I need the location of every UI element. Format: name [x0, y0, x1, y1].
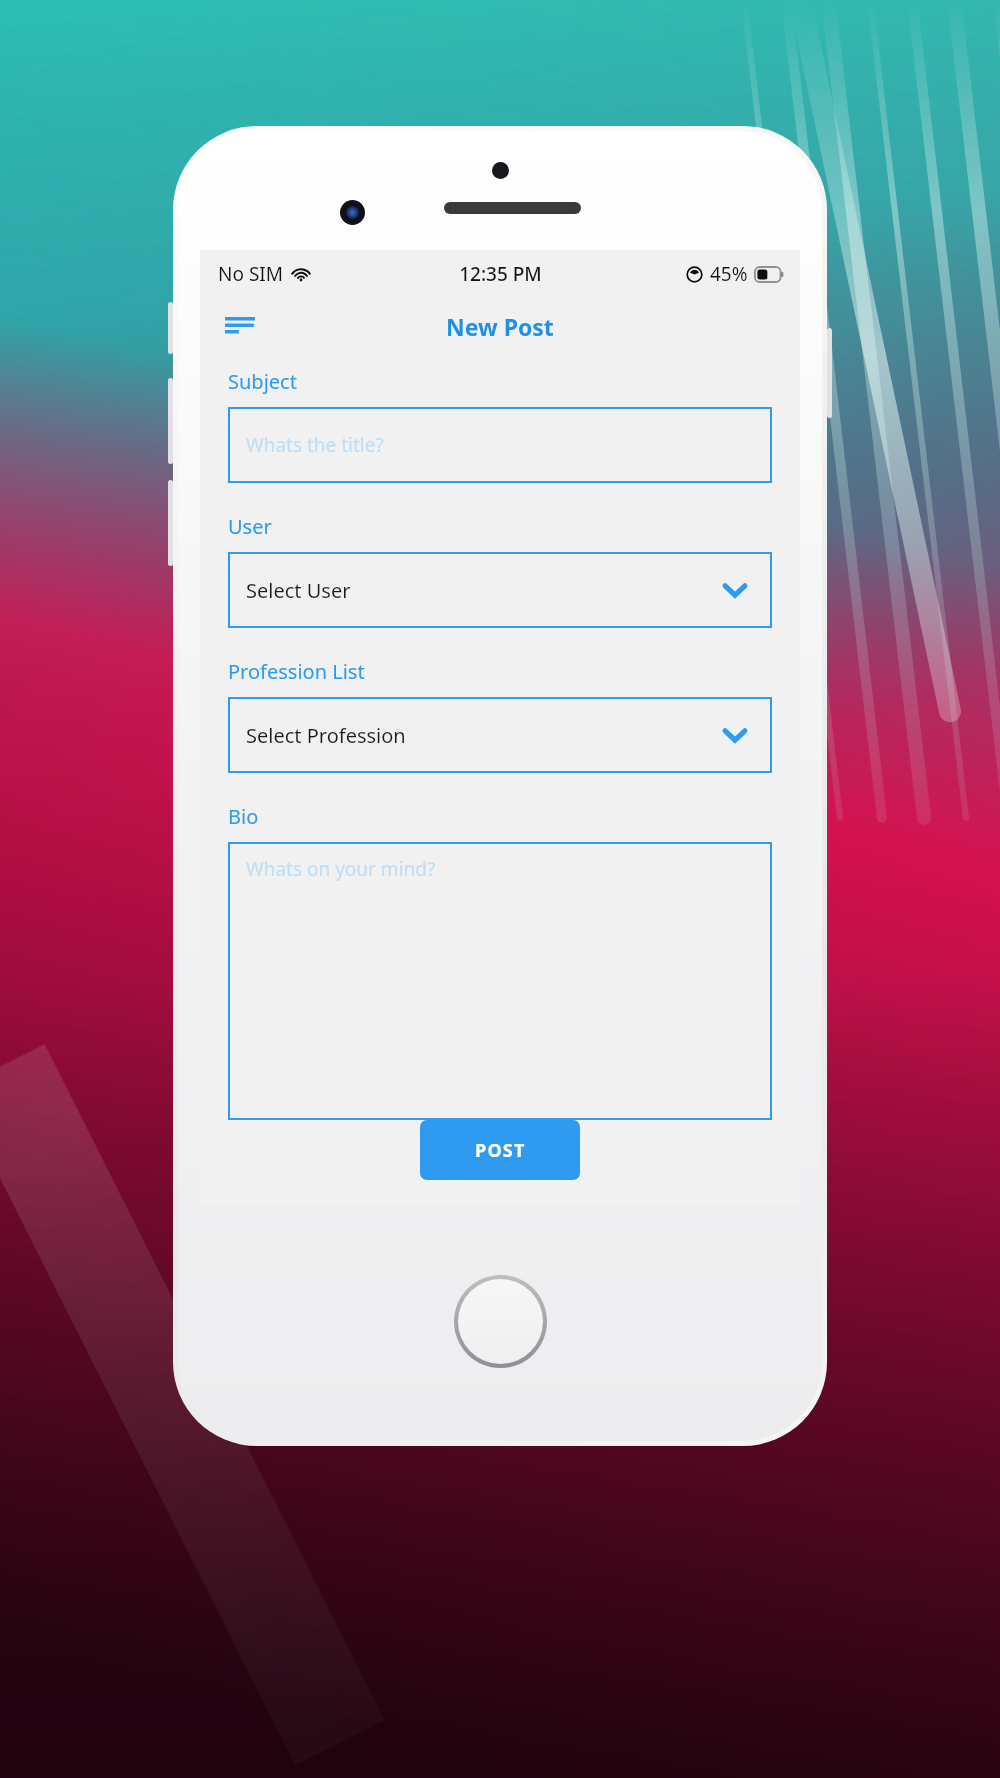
button[interactable]: Select Profession: [228, 697, 772, 773]
staticText: Whats on your mind?: [246, 856, 436, 882]
staticText: 12:35 PM: [459, 261, 542, 287]
staticText: User: [228, 513, 272, 540]
staticText: Whats the title?: [246, 432, 384, 458]
button[interactable]: POST: [420, 1120, 580, 1180]
staticText: 45%: [710, 261, 748, 287]
staticText: Select Profession: [246, 722, 406, 749]
button[interactable]: Select User: [228, 552, 772, 628]
staticText: Select User: [246, 577, 351, 604]
staticText: No SIM: [218, 261, 283, 287]
staticText: Bio: [228, 803, 259, 830]
staticText: Profession List: [228, 658, 365, 685]
button[interactable]: Whats on your mind?: [228, 842, 772, 1120]
button[interactable]: Menu: [218, 304, 262, 348]
button[interactable]: Whats the title?: [228, 407, 772, 483]
staticText: New Post: [446, 311, 554, 342]
staticText: Subject: [228, 368, 297, 395]
staticText: POST: [475, 1138, 526, 1163]
